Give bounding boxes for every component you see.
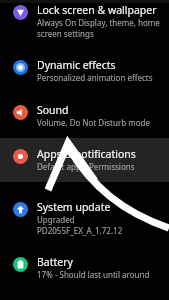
- button[interactable]: System update: [0, 199, 169, 245]
- staticText: Upgraded: [37, 214, 75, 225]
- button[interactable]: Lock screen & wallpaper: [0, 3, 169, 48]
- button[interactable]: Battery: [0, 245, 169, 290]
- staticText: 17% - Should last until around 01:00: [37, 269, 165, 280]
- staticText: Sound: [37, 103, 69, 117]
- staticText: Always On Display, theme, home: [37, 17, 160, 28]
- button[interactable]: Sound: [0, 93, 169, 138]
- staticText: Battery: [37, 255, 73, 269]
- other: Sound: [13, 105, 28, 120]
- other: Dynamic effects: [13, 60, 28, 75]
- staticText: PD2055F_EX_A_1.72.12: [37, 225, 123, 236]
- other: Battery: [13, 257, 28, 272]
- staticText: screen settings: [37, 28, 94, 39]
- other: System update: [13, 202, 28, 217]
- button[interactable]: Apps & notifications: [0, 138, 169, 182]
- staticText: Default apps, Permissions: [37, 161, 135, 172]
- staticText: Apps & notifications: [37, 147, 136, 161]
- staticText: Volume, Do Not Disturb mode: [37, 117, 150, 128]
- staticText: Personalized animation effects: [37, 72, 153, 83]
- other: Apps & notifications: [13, 149, 28, 164]
- staticText: Lock screen & wallpaper: [37, 3, 157, 17]
- other: Lock screen & wallpaper: [13, 5, 28, 20]
- button[interactable]: Dynamic effects: [0, 48, 169, 93]
- staticText: System update: [37, 200, 111, 214]
- staticText: Dynamic effects: [37, 58, 116, 72]
